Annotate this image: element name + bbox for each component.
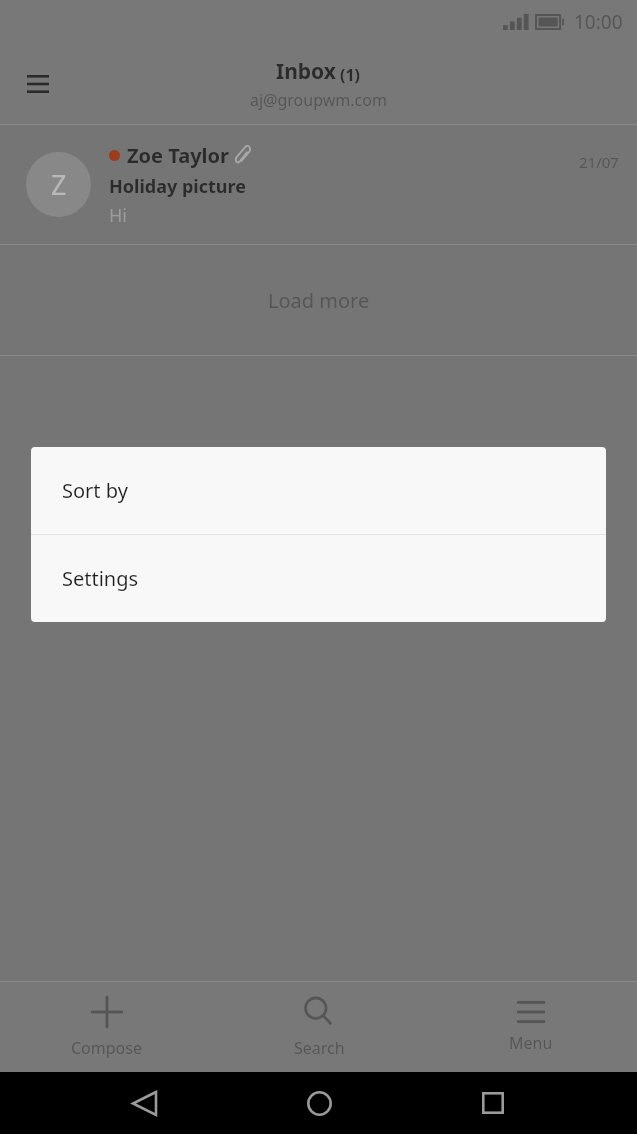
button[interactable]: Search xyxy=(213,988,425,1067)
staticText: Inbox xyxy=(276,57,336,86)
button[interactable]: Open navigation drawer xyxy=(12,58,64,110)
button[interactable]: Z xyxy=(0,125,637,244)
staticText: Load more xyxy=(268,287,370,314)
button[interactable]: Settings xyxy=(31,535,606,622)
button[interactable]: Back xyxy=(114,1073,174,1133)
staticText: aj@groupwm.com xyxy=(250,89,387,111)
staticText: Compose xyxy=(71,1037,142,1059)
staticText: 21/07 xyxy=(579,152,619,172)
staticText: Holiday picture xyxy=(109,174,246,199)
button[interactable]: Recent apps xyxy=(463,1073,523,1133)
button[interactable]: Compose xyxy=(0,988,213,1067)
staticText: (1) xyxy=(340,64,361,86)
button[interactable]: Menu xyxy=(425,993,637,1062)
staticText: Settings xyxy=(62,565,139,592)
button[interactable]: Sort by xyxy=(31,447,606,534)
button[interactable]: Home xyxy=(289,1073,349,1133)
staticText: Hi xyxy=(109,203,127,228)
staticText: Sort by xyxy=(62,477,128,504)
staticText: Zoe Taylor xyxy=(127,142,229,169)
staticText: Z xyxy=(51,166,67,203)
staticText: 10:00 xyxy=(574,9,623,35)
staticText: Menu xyxy=(509,1032,553,1054)
staticText: Search xyxy=(294,1037,345,1059)
